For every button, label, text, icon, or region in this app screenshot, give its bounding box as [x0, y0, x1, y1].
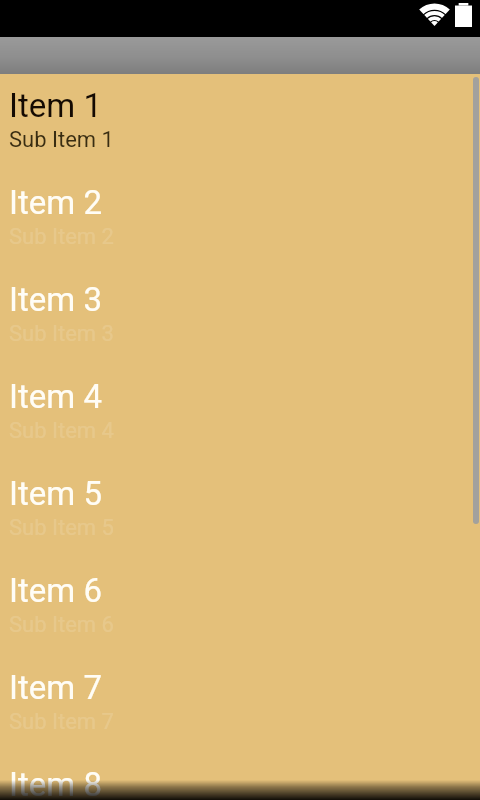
staticText: Item 5 — [9, 474, 102, 513]
staticText: Sub Item 4 — [9, 418, 114, 444]
staticText: Sub Item 3 — [9, 321, 114, 347]
button[interactable]: Item 4 — [0, 365, 480, 462]
other: Battery full — [455, 3, 472, 27]
staticText: Sub Item 6 — [9, 612, 114, 638]
button[interactable]: Item 6 — [0, 559, 480, 656]
staticText: Item 6 — [9, 571, 102, 610]
other: Wi-Fi signal — [420, 4, 449, 26]
staticText: Item 1 — [9, 86, 102, 125]
staticText: Sub Item 7 — [9, 709, 114, 735]
staticText: Item 4 — [9, 377, 102, 416]
button[interactable]: Item 8 — [0, 753, 480, 800]
button[interactable]: Item 2 — [0, 171, 480, 268]
staticText: Sub Item 1 — [9, 127, 114, 153]
button[interactable]: Item 3 — [0, 268, 480, 365]
button[interactable]: Item 7 — [0, 656, 480, 753]
staticText: Item 2 — [9, 183, 102, 222]
staticText: Sub Item 2 — [9, 224, 114, 250]
button[interactable]: Item 5 — [0, 462, 480, 559]
staticText: Item 3 — [9, 280, 102, 319]
button[interactable]: Item 1 — [0, 74, 480, 171]
staticText: Item 7 — [9, 668, 102, 707]
staticText: Sub Item 5 — [9, 515, 114, 541]
staticText: Item 8 — [9, 765, 102, 800]
